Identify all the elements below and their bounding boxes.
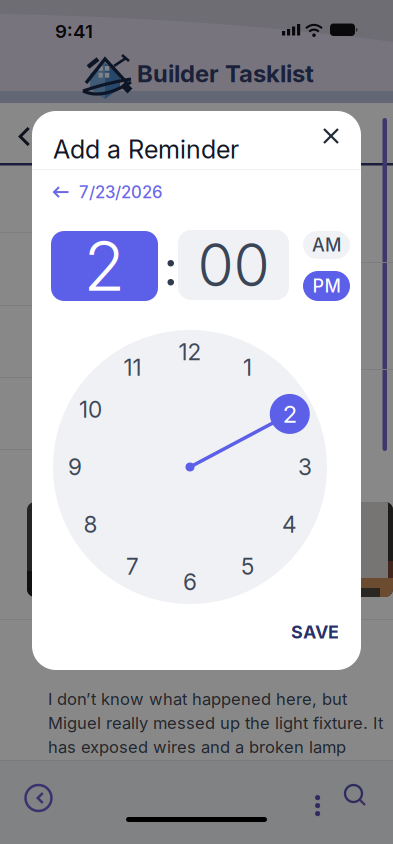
staticText: 12	[178, 338, 201, 366]
button[interactable]: AM	[303, 231, 350, 259]
staticText: 10	[79, 396, 102, 423]
staticText: PM	[312, 275, 340, 297]
button[interactable]: Back	[12, 124, 36, 148]
button[interactable]: 4	[282, 511, 297, 538]
staticText: SAVE	[291, 621, 339, 643]
staticText: 8	[83, 511, 97, 538]
staticText: I don’t know what happened here, but	[48, 689, 347, 709]
staticText: 3	[298, 453, 312, 481]
button[interactable]: Close	[321, 126, 341, 146]
button[interactable]: More options	[315, 787, 320, 808]
staticText: 7	[126, 553, 139, 580]
button[interactable]: 6	[183, 568, 197, 596]
staticText: Add a Reminder	[53, 134, 239, 165]
staticText: AM	[312, 234, 341, 256]
button[interactable]: 9	[68, 453, 82, 481]
staticText: 2	[83, 225, 125, 307]
button[interactable]: 2 o'clock	[270, 394, 310, 434]
button[interactable]: Search	[345, 785, 366, 806]
staticText: 2	[283, 399, 297, 428]
button[interactable]: 12	[178, 338, 201, 366]
staticText: 9:41	[55, 20, 93, 43]
button[interactable]: 2	[51, 231, 158, 301]
staticText: Miguel really messed up the light fixtur…	[48, 713, 383, 733]
button[interactable]: PM	[303, 271, 350, 301]
staticText: 6	[183, 568, 197, 596]
button[interactable]: Save	[291, 621, 339, 643]
staticText: 00	[197, 229, 269, 300]
button[interactable]: 8	[83, 511, 97, 538]
button[interactable]: 1	[243, 354, 252, 381]
staticText: 9	[68, 453, 82, 481]
button[interactable]: 5	[241, 553, 254, 580]
staticText: 4	[282, 511, 297, 538]
button[interactable]: 10	[79, 396, 102, 423]
button[interactable]: 00	[178, 230, 289, 300]
button[interactable]: Back	[25, 785, 51, 811]
button[interactable]: 11	[123, 354, 141, 381]
staticText: has exposed wires and a broken lamp	[48, 737, 346, 757]
staticText: 11	[123, 354, 141, 381]
button[interactable]: 3	[298, 453, 312, 481]
staticText: 1	[243, 354, 252, 381]
button[interactable]: 7	[126, 553, 139, 580]
button[interactable]: Back to date	[53, 182, 162, 202]
staticText: Builder Tasklist	[137, 59, 314, 88]
staticText: 5	[241, 553, 254, 580]
staticText: 7/23/2026	[79, 182, 162, 202]
